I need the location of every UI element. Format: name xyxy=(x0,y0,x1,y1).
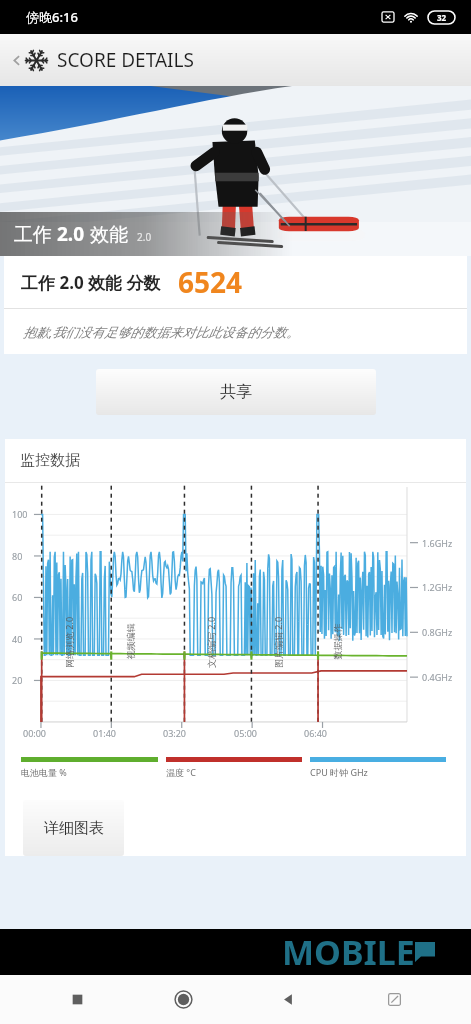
staticText: 工作 xyxy=(14,221,57,247)
staticText: 工作 2.0 效能 分数 xyxy=(21,271,161,294)
staticText: 监控数据 xyxy=(20,451,80,470)
staticText: MOBILE xyxy=(282,929,415,975)
button[interactable]: Recent apps xyxy=(48,975,106,1024)
staticText: 图片编辑 2.0 xyxy=(272,616,284,668)
staticText: 详细图表 xyxy=(44,819,104,838)
staticText: 2.0 xyxy=(137,230,152,244)
staticText: 1.6GHz xyxy=(422,537,453,549)
staticText: 文档编写 2.0 xyxy=(205,616,217,668)
button[interactable]: Resize screen xyxy=(365,975,423,1024)
staticText: 100 xyxy=(12,508,28,520)
button[interactable]: Back xyxy=(4,41,200,79)
staticText: 01:40 xyxy=(93,727,117,739)
staticText: 00:00 xyxy=(23,727,47,739)
staticText: SCORE DETAILS xyxy=(57,47,194,73)
staticText: 60 xyxy=(12,591,23,603)
staticText: 抱歉,我们没有足够的数据来对比此设备的分数。 xyxy=(23,323,300,341)
staticText: 05:00 xyxy=(234,727,258,739)
staticText: 40 xyxy=(12,633,23,645)
staticText: 网络浏览 2.0 xyxy=(63,616,75,668)
staticText: 03:20 xyxy=(163,727,187,739)
staticText: 1.2GHz xyxy=(422,581,453,593)
staticText: 0.4GHz xyxy=(422,671,453,683)
staticText: CPU 时钟 GHz xyxy=(310,766,368,778)
staticText: 傍晚6:16 xyxy=(26,8,78,26)
staticText: 温度 °C xyxy=(166,766,196,778)
button[interactable]: Back xyxy=(259,975,317,1024)
button[interactable]: Home xyxy=(154,975,212,1024)
staticText: 效能 xyxy=(85,221,128,247)
staticText: 视频编辑 xyxy=(124,623,135,659)
staticText: 2.0 xyxy=(57,221,85,247)
button[interactable]: 详细图表 xyxy=(23,800,124,856)
staticText: 80 xyxy=(12,550,23,562)
staticText: 20 xyxy=(12,674,23,686)
staticText: 6524 xyxy=(178,263,243,301)
button[interactable]: 共享 xyxy=(96,369,376,415)
staticText: 电池电量 % xyxy=(21,766,67,778)
staticText: 共享 xyxy=(220,382,252,402)
staticText: 32 xyxy=(437,12,447,23)
staticText: 06:40 xyxy=(304,727,328,739)
staticText: 0.8GHz xyxy=(422,626,453,638)
staticText: 数据操作 xyxy=(331,623,342,659)
